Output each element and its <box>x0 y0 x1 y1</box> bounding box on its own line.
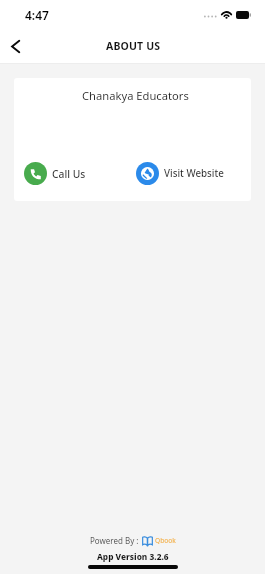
button[interactable]: Powered By : <box>90 535 176 546</box>
staticText: App Version 3.2.6 <box>97 551 169 562</box>
staticText: 4:47 <box>25 7 49 23</box>
button[interactable]: Visit Website <box>136 162 224 185</box>
staticText: Visit Website <box>164 167 224 180</box>
staticText: Chanakya Educators <box>82 88 189 103</box>
button[interactable]: Back <box>2 34 28 60</box>
staticText: Call Us <box>52 167 86 181</box>
staticText: Qbook <box>155 536 176 545</box>
staticText: ABOUT US <box>106 39 161 53</box>
button[interactable]: Call Us <box>24 162 86 185</box>
staticText: Powered By : <box>90 535 141 546</box>
